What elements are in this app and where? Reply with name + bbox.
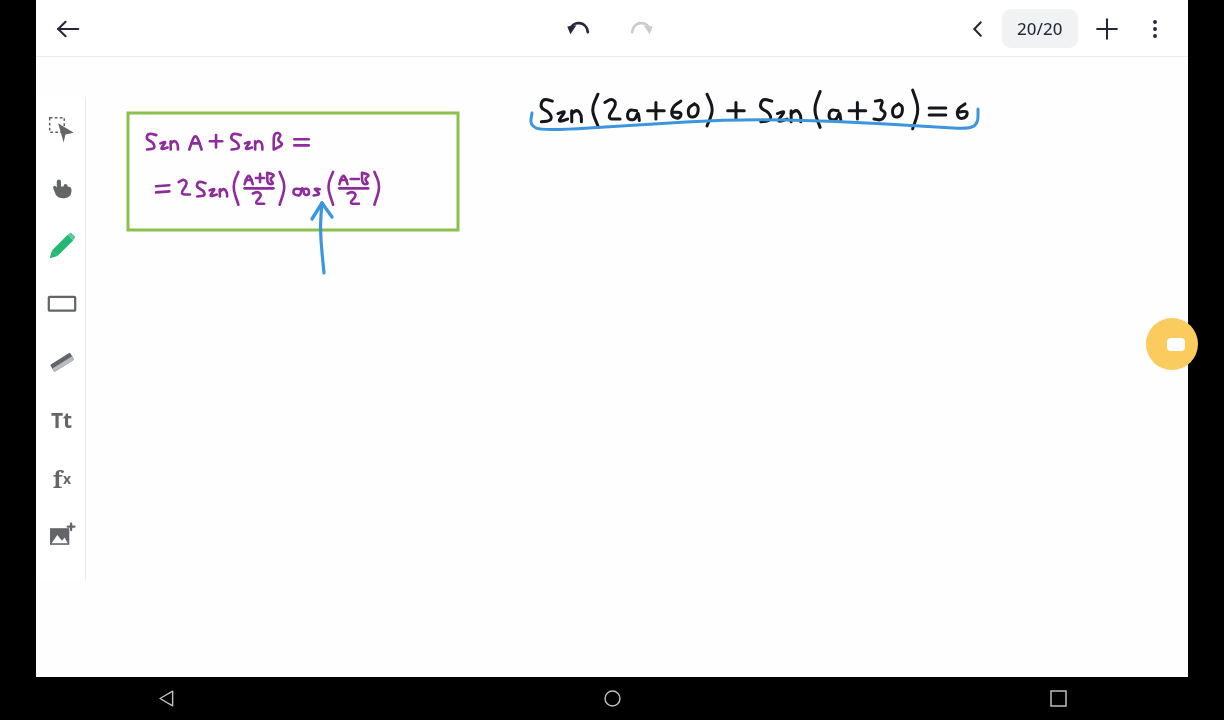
- staticText: x: [63, 469, 72, 488]
- button[interactable]: Add page: [1084, 6, 1130, 52]
- button[interactable]: Assistant: [1146, 318, 1198, 370]
- button[interactable]: Back: [44, 5, 92, 53]
- button[interactable]: Eraser tool: [38, 333, 86, 391]
- button[interactable]: Pen tool: [38, 217, 86, 275]
- button[interactable]: Redo: [617, 5, 665, 53]
- staticText: 20/20: [1017, 17, 1063, 40]
- button[interactable]: Back: [140, 677, 192, 720]
- staticText: Tt: [51, 406, 73, 435]
- button[interactable]: Pan tool: [38, 159, 86, 217]
- button[interactable]: Formula tool: [38, 449, 86, 507]
- button[interactable]: Undo: [555, 5, 603, 53]
- button[interactable]: Shape tool: [38, 275, 86, 333]
- button[interactable]: Insert image: [38, 507, 86, 565]
- button[interactable]: Recent apps: [1032, 677, 1084, 720]
- button[interactable]: Previous page: [956, 7, 1000, 51]
- button[interactable]: Home: [586, 677, 638, 720]
- button[interactable]: Select tool: [38, 101, 86, 159]
- staticText: f: [53, 463, 63, 494]
- button[interactable]: Text tool: [38, 391, 86, 449]
- button[interactable]: More options: [1132, 6, 1178, 52]
- button[interactable]: 20/20: [1002, 9, 1078, 48]
